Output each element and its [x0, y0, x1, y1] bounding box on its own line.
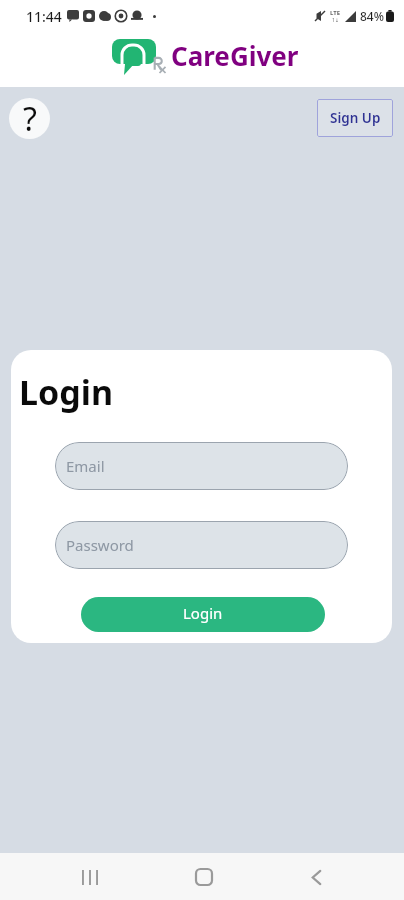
staticText: 1↓ [332, 17, 340, 24]
staticText: Email [66, 456, 105, 476]
staticText: 84% [360, 8, 384, 24]
staticText: LTE [330, 9, 341, 17]
button[interactable]: Email [55, 442, 348, 490]
button[interactable]: Sign Up [317, 99, 393, 137]
button[interactable]: Help [9, 98, 50, 139]
staticText: Login [19, 369, 114, 415]
staticText: Sign Up [330, 109, 381, 127]
button[interactable]: Home [182, 855, 226, 899]
staticText: Login [183, 603, 223, 623]
staticText: 11:44 [26, 7, 62, 26]
button[interactable]: Login [81, 597, 325, 632]
button[interactable]: Recents [68, 855, 112, 899]
staticText: CareGiver [171, 38, 299, 73]
button[interactable]: Password [55, 521, 348, 569]
staticText: ? [23, 98, 37, 138]
button[interactable]: Back [294, 855, 338, 899]
staticText: Password [66, 535, 134, 555]
